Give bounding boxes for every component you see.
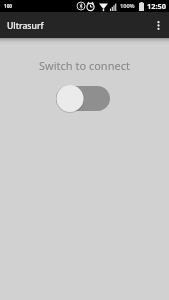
- staticText: Ultrasurf: [7, 20, 44, 32]
- staticText: 100%: [120, 2, 135, 10]
- staticText: Switch to connect: [39, 58, 130, 72]
- button[interactable]: More options: [147, 12, 169, 38]
- button[interactable]: Switch to connect: [55, 84, 111, 112]
- staticText: 100: [4, 3, 13, 9]
- staticText: 12:50: [147, 1, 166, 11]
